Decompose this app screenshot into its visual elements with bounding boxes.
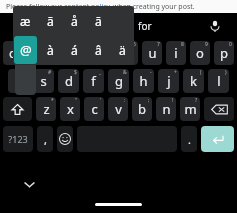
staticText: ; bbox=[148, 97, 150, 104]
button[interactable]: v bbox=[108, 97, 128, 121]
button[interactable]: i bbox=[166, 41, 186, 65]
button[interactable]: a bbox=[8, 69, 29, 93]
button[interactable]: å bbox=[62, 6, 86, 35]
button[interactable] bbox=[110, 6, 134, 35]
staticText: à bbox=[47, 42, 54, 58]
button[interactable]: Emoji bbox=[57, 126, 73, 152]
staticText: ' bbox=[100, 97, 102, 104]
staticText: â bbox=[95, 42, 102, 58]
button[interactable]: ã bbox=[38, 6, 62, 35]
button[interactable]: Voice input bbox=[193, 13, 237, 39]
staticText: x bbox=[67, 100, 74, 118]
button[interactable]: k bbox=[183, 69, 204, 93]
button[interactable]: h bbox=[133, 69, 154, 93]
staticText: j bbox=[167, 72, 171, 90]
button[interactable]: content policy bbox=[64, 2, 111, 12]
button[interactable]: @ bbox=[14, 36, 37, 64]
button[interactable]: q bbox=[3, 41, 22, 65]
button[interactable]: , bbox=[37, 126, 53, 152]
staticText: u bbox=[148, 44, 157, 62]
button[interactable]: x bbox=[60, 97, 80, 121]
button[interactable]: u bbox=[142, 41, 162, 65]
button[interactable] bbox=[0, 13, 96, 39]
staticText: d bbox=[65, 72, 73, 90]
button[interactable]: j bbox=[158, 69, 179, 93]
staticText: - bbox=[150, 69, 152, 76]
staticText: ? bbox=[195, 97, 198, 104]
button[interactable]: Enter bbox=[201, 126, 234, 152]
staticText: s bbox=[40, 72, 47, 90]
staticText: . bbox=[188, 132, 191, 147]
staticText: l bbox=[217, 72, 221, 90]
staticText: å bbox=[71, 13, 78, 29]
button[interactable]: ā bbox=[86, 6, 110, 35]
button[interactable]: w bbox=[26, 41, 45, 65]
staticText: f bbox=[91, 72, 96, 90]
button[interactable]: Backspace bbox=[204, 97, 234, 121]
staticText: $ bbox=[74, 69, 77, 76]
staticText: k bbox=[190, 72, 197, 90]
staticText: * bbox=[51, 97, 54, 104]
staticText: , bbox=[44, 132, 47, 147]
staticText: & bbox=[123, 69, 127, 76]
staticText: ) bbox=[225, 69, 227, 76]
button[interactable]: ä bbox=[110, 35, 134, 65]
button[interactable]: for bbox=[96, 13, 193, 39]
staticText: z bbox=[43, 100, 50, 118]
button[interactable]: ?123 bbox=[3, 126, 33, 152]
button[interactable]: æ bbox=[13, 6, 38, 35]
staticText: ā bbox=[95, 13, 102, 29]
button[interactable]: t bbox=[95, 41, 114, 65]
button[interactable]: o bbox=[190, 41, 210, 65]
button[interactable]: . bbox=[181, 126, 197, 152]
staticText: 6 bbox=[133, 41, 136, 48]
staticText: h bbox=[139, 72, 148, 90]
staticText: : bbox=[124, 97, 126, 104]
button[interactable]: c bbox=[84, 97, 104, 121]
button[interactable]: d bbox=[58, 69, 79, 93]
staticText: 0 bbox=[229, 41, 232, 48]
staticText: Please follow our bbox=[6, 2, 64, 12]
staticText: + bbox=[174, 69, 177, 76]
button[interactable]: f bbox=[83, 69, 104, 93]
button[interactable]: y bbox=[118, 41, 138, 65]
staticText: @ bbox=[20, 41, 32, 59]
button[interactable]: à bbox=[38, 35, 62, 65]
button[interactable]: á bbox=[62, 35, 86, 65]
staticText: g bbox=[115, 72, 123, 90]
button[interactable]: z bbox=[36, 97, 56, 121]
staticText: ã bbox=[47, 13, 54, 29]
button[interactable]: Hide keyboard bbox=[20, 175, 38, 193]
staticText: # bbox=[48, 69, 52, 76]
button[interactable]: n bbox=[156, 97, 176, 121]
staticText: i bbox=[174, 44, 178, 62]
staticText: " bbox=[75, 97, 78, 104]
button[interactable]: r bbox=[72, 41, 91, 65]
button[interactable]: l bbox=[208, 69, 229, 93]
button[interactable]: Shift bbox=[3, 97, 32, 121]
staticText: ( bbox=[200, 69, 202, 76]
button[interactable]: b bbox=[132, 97, 152, 121]
staticText: á bbox=[71, 42, 78, 58]
staticText: _ bbox=[99, 69, 102, 76]
button[interactable]: â bbox=[86, 35, 110, 65]
staticText: w bbox=[30, 44, 41, 62]
button[interactable]: m bbox=[180, 97, 200, 121]
button[interactable]: p bbox=[214, 41, 234, 65]
button[interactable]: e bbox=[49, 41, 68, 65]
button[interactable]: g bbox=[108, 69, 129, 93]
button[interactable]: s bbox=[33, 69, 54, 93]
staticText: ?123 bbox=[8, 133, 28, 145]
staticText: n bbox=[162, 100, 171, 118]
staticText: v bbox=[115, 100, 122, 118]
staticText: m bbox=[184, 100, 197, 118]
